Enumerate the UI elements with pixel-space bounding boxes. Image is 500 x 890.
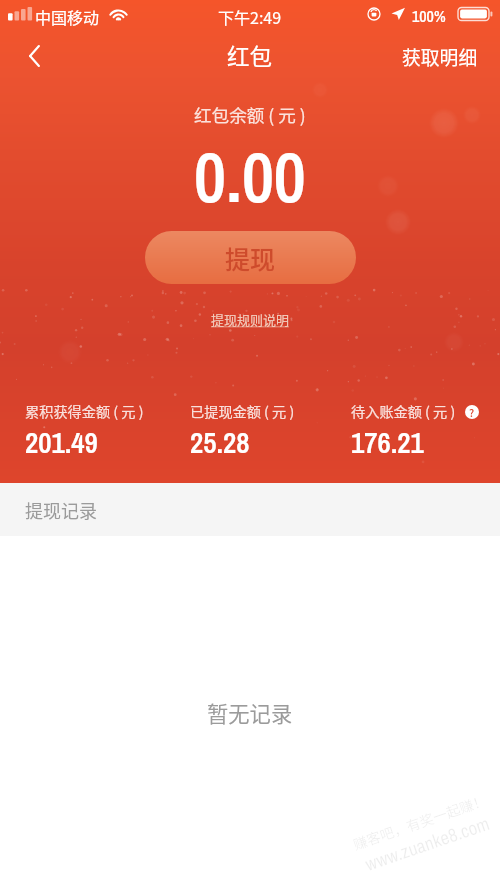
staticText: 待入账金额 ( 元 ) bbox=[351, 401, 456, 422]
staticText: 赚客吧，有奖一起赚！ bbox=[350, 789, 489, 854]
staticText: 红包余额 ( 元 ) bbox=[194, 102, 306, 127]
button[interactable]: 获取明细 bbox=[388, 33, 500, 79]
staticText: 176.21 bbox=[351, 423, 424, 462]
staticText: www.zuanke8.com bbox=[362, 810, 493, 877]
staticText: 提现记录 bbox=[25, 497, 97, 523]
staticText: 暂无记录 bbox=[207, 697, 293, 728]
staticText: 红包 bbox=[227, 39, 273, 72]
button[interactable]: Back bbox=[0, 33, 58, 79]
staticText: 201.49 bbox=[25, 423, 98, 462]
button[interactable]: 提现 bbox=[145, 231, 356, 284]
staticText: 提现规则说明 bbox=[211, 310, 290, 329]
other: Rotation lock bbox=[367, 7, 381, 21]
staticText: 0.00 bbox=[194, 130, 306, 224]
staticText: 中国移动 bbox=[35, 5, 100, 28]
staticText: 下午2:49 bbox=[218, 5, 282, 28]
staticText: 获取明细 bbox=[402, 43, 478, 70]
button[interactable]: 提现规则说明 bbox=[211, 310, 290, 329]
staticText: 100% bbox=[412, 5, 446, 27]
button[interactable]: Help bbox=[465, 405, 479, 419]
staticText: ? bbox=[469, 405, 475, 419]
staticText: 累积获得金额 ( 元 ) bbox=[25, 401, 144, 422]
staticText: 提现 bbox=[225, 240, 276, 276]
other: Location bbox=[391, 7, 405, 20]
staticText: 已提现金额 ( 元 ) bbox=[190, 401, 295, 422]
staticText: 25.28 bbox=[190, 423, 250, 462]
